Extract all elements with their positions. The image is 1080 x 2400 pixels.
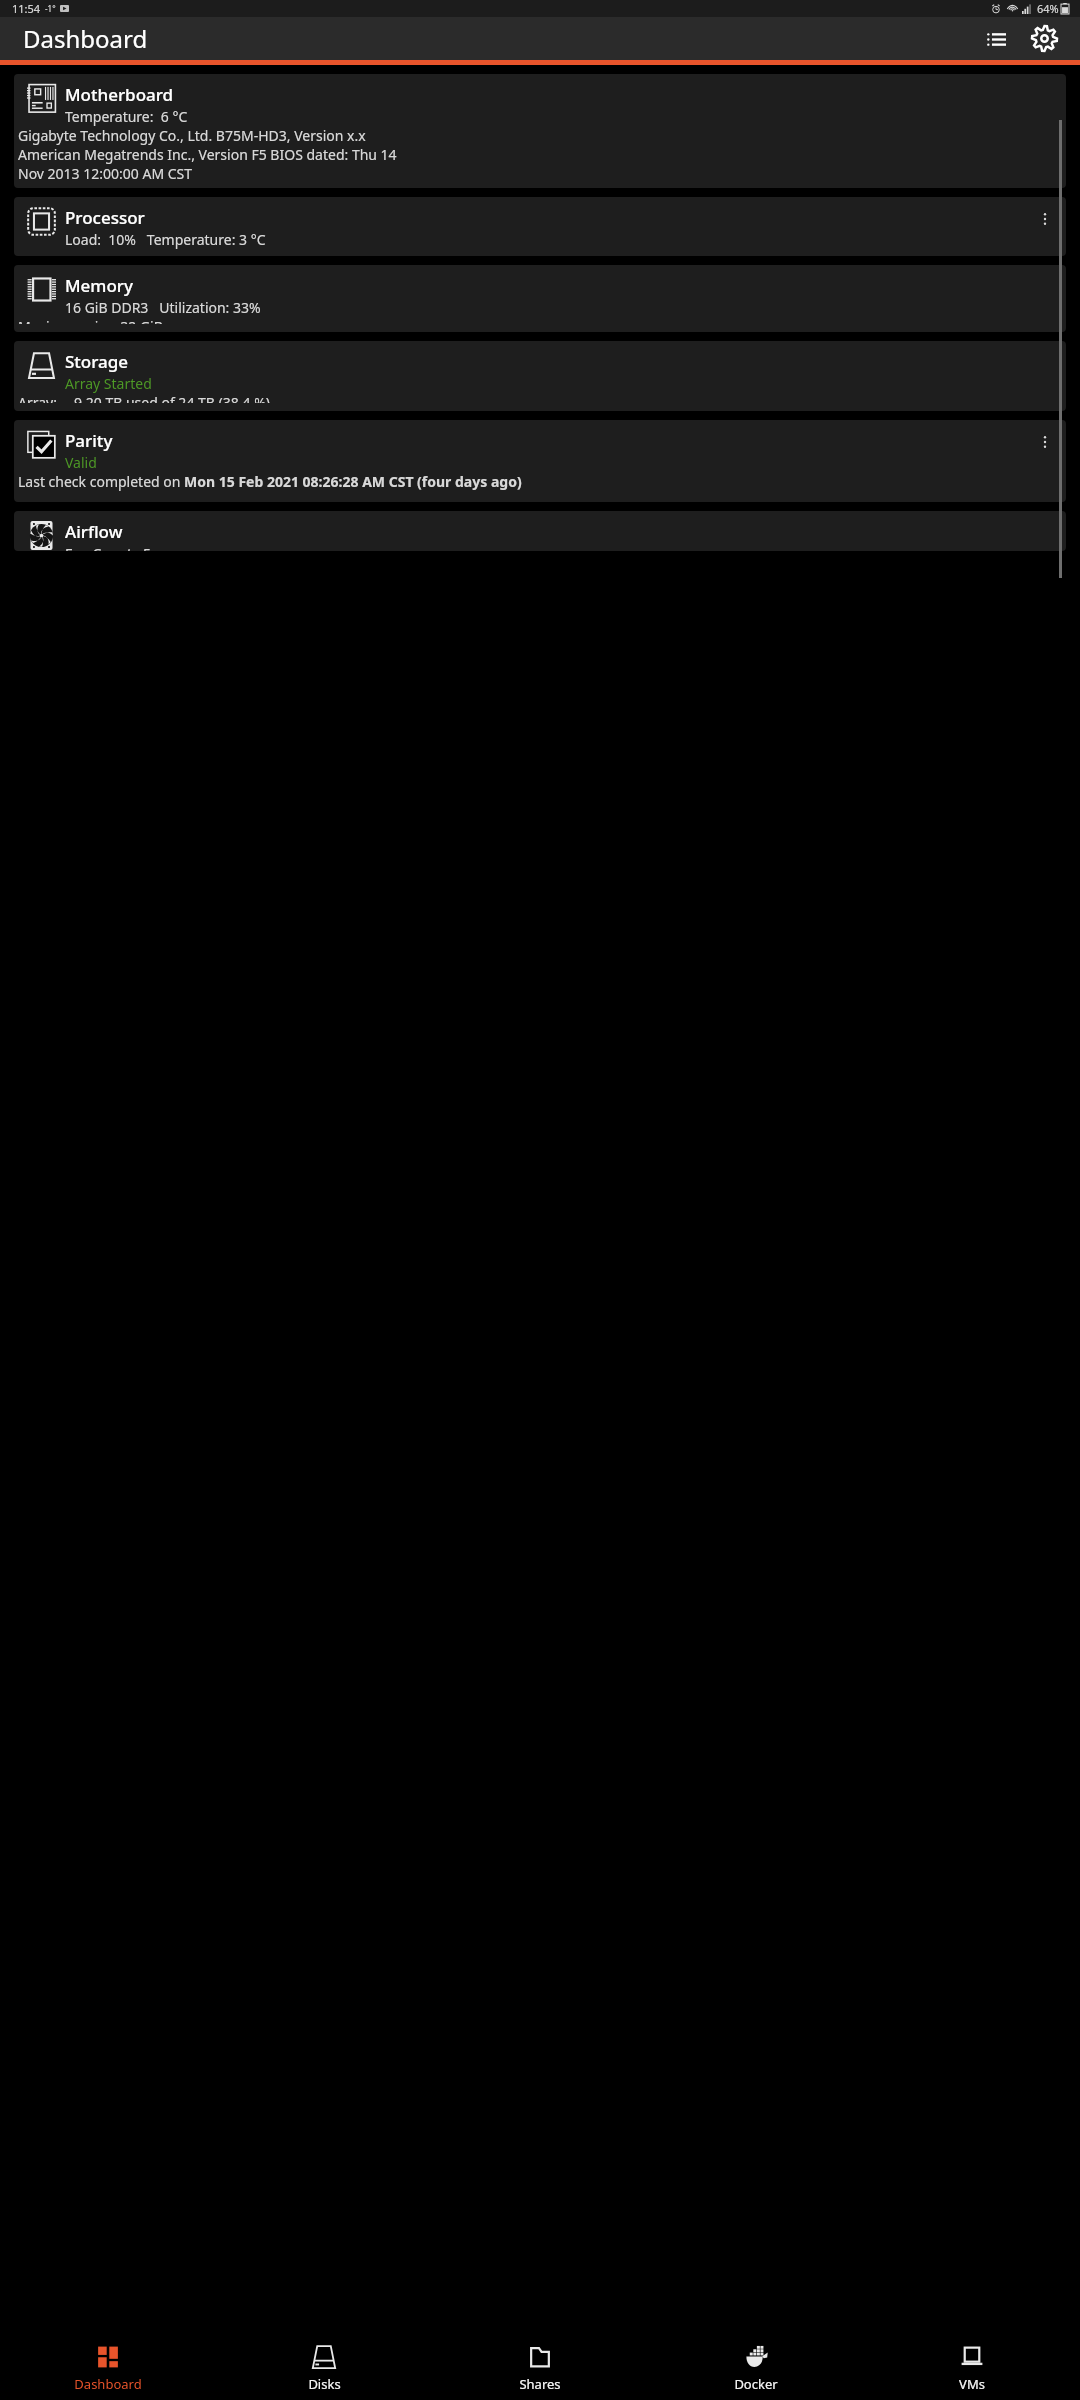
staticText: Shares [519,2375,561,2393]
staticText: 11:54 [12,1,41,16]
staticText: Motherboard [65,83,174,106]
staticText: 16 GiB DDR3 Utilization: 33% [65,298,261,317]
button[interactable]: VMs [864,2336,1080,2400]
staticText: Array: [18,393,74,403]
staticText: Storage [65,350,129,373]
button[interactable]: Docker [648,2336,864,2400]
staticText: Docker [734,2375,778,2393]
button[interactable]: Motherboard [14,74,1066,188]
staticText: Dashboard [74,2375,142,2393]
button[interactable]: Shares [432,2336,648,2400]
button[interactable]: List view [976,19,1016,59]
staticText: Disks [308,2375,341,2393]
staticText: Last check completed on Mon 15 Feb 2021 … [18,472,522,491]
button[interactable]: Settings [1022,17,1066,60]
button[interactable]: Parity [14,420,1066,502]
staticText: Dashboard [23,22,148,55]
staticText: Processor [65,206,145,229]
button[interactable]: Disks [216,2336,432,2400]
staticText: Gigabyte Technology Co., Ltd. B75M-HD3, … [18,126,397,180]
button[interactable]: Processor [14,197,1066,256]
staticText: Load: 10% Temperature: 3 °C [65,230,266,249]
staticText: Array Started [65,374,152,393]
button[interactable]: Memory [14,265,1066,332]
button[interactable]: Airflow [14,511,1066,551]
staticText: Memory [65,274,134,297]
button[interactable]: More options [1032,429,1058,455]
staticText: Valid [65,453,97,472]
staticText: Maximum size: 32 GiB Usable size: 15.6 G… [18,317,163,324]
button[interactable]: More options [1032,206,1058,232]
staticText: -1° [45,3,56,14]
staticText: VMs [959,2375,985,2393]
staticText: Fan Count: 5 [65,544,152,551]
staticText: Airflow [65,520,123,543]
staticText: 9.20 TB used of 24 TB (38.4 %) [74,393,270,403]
button[interactable]: Storage [14,341,1066,411]
staticText: 64% [1037,1,1059,16]
button[interactable]: Dashboard [0,2336,216,2400]
staticText: Parity [65,429,113,452]
staticText: Temperature: 6 °C [65,107,188,126]
